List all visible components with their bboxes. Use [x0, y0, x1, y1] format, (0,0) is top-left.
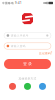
button[interactable]: 登 录	[4, 59, 51, 69]
staticText: 请输入手机号	[11, 34, 29, 37]
button[interactable]: WeChat login	[24, 83, 31, 90]
button[interactable]: QQ login	[9, 83, 16, 90]
button[interactable]: 请输入手机号	[4, 32, 51, 39]
button[interactable]: Weibo login	[39, 83, 46, 90]
staticText: 登 录	[23, 61, 32, 66]
staticText: 中国移动	[2, 1, 14, 5]
staticText: 9:41	[15, 1, 22, 5]
staticText: 忘记密码?	[39, 51, 52, 55]
button[interactable]: 忘记密码?	[39, 51, 52, 55]
button[interactable]: 请输入密码	[4, 43, 51, 49]
staticText: 其他登录方式	[18, 77, 36, 80]
staticText: 请输入密码	[11, 44, 26, 48]
